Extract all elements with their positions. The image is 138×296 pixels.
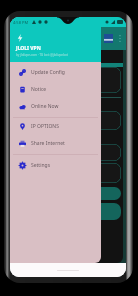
- staticText: 4:58 PM: [13, 20, 29, 25]
- staticText: IP OPTIONS: [31, 123, 59, 130]
- button[interactable]: Online Now: [10, 98, 101, 115]
- staticText: Update Config: [31, 69, 65, 76]
- button[interactable]: [10, 203, 121, 220]
- staticText: by jlolivpn.com · TG bot: @jlolivpnbot: [16, 53, 68, 57]
- staticText: Notice: [31, 86, 47, 93]
- staticText: SERVER: [14, 54, 29, 59]
- button[interactable]: [10, 187, 121, 200]
- button[interactable]: Selected server flag: [104, 34, 113, 43]
- button[interactable]: [10, 163, 121, 183]
- button[interactable]: Notice: [10, 81, 101, 98]
- staticText: Share Internet: [31, 140, 65, 147]
- staticText: Settings: [31, 162, 51, 169]
- button[interactable]: [10, 144, 121, 161]
- button[interactable]: More options: [117, 32, 123, 45]
- button[interactable]: IP OPTIONS: [10, 118, 101, 135]
- button[interactable]: Share Internet: [10, 135, 101, 152]
- staticText: JLOLI VPN: [16, 45, 41, 52]
- button[interactable]: Update Config: [10, 64, 101, 81]
- button[interactable]: SERVER: [10, 50, 91, 62]
- button[interactable]: Settings: [10, 157, 101, 174]
- button[interactable]: [10, 67, 121, 93]
- staticText: Online Now: [31, 103, 59, 110]
- button[interactable]: [10, 111, 121, 130]
